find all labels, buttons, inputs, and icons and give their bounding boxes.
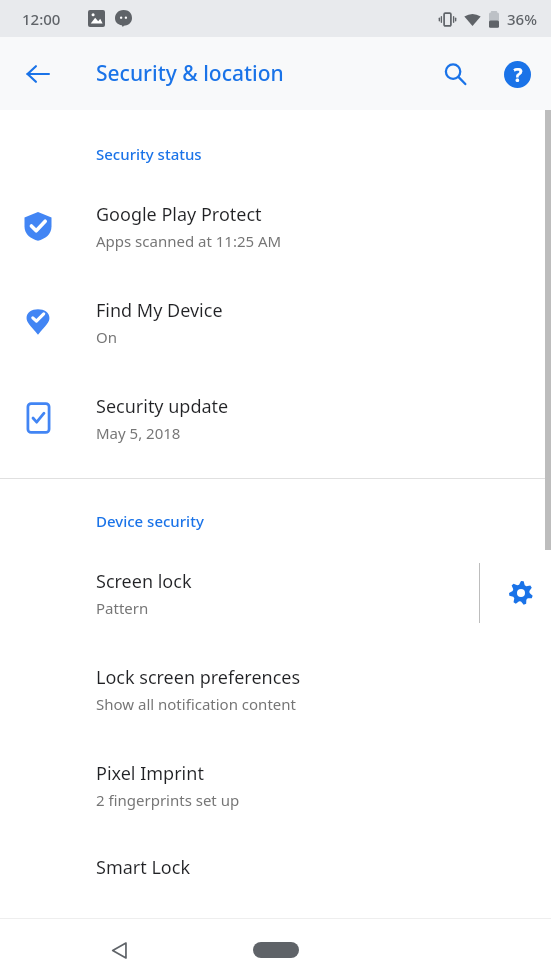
button[interactable]: Lock screen preferences <box>0 653 551 725</box>
staticText: Pattern <box>96 598 149 618</box>
button[interactable]: Screen lock <box>0 557 551 629</box>
staticText: 12:00 <box>22 9 61 29</box>
staticText: Screen lock <box>96 569 192 594</box>
button[interactable]: Home <box>246 930 306 970</box>
button[interactable]: Search <box>431 50 479 98</box>
staticText: Lock screen preferences <box>96 665 301 690</box>
staticText: Security & location <box>96 59 284 88</box>
staticText: May 5, 2018 <box>96 423 181 443</box>
staticText: 2 fingerprints set up <box>96 790 240 810</box>
staticText: Security update <box>96 394 229 419</box>
button[interactable]: Google Play Protect <box>0 190 551 262</box>
button[interactable]: Find My Device <box>0 286 551 358</box>
staticText: Device security <box>96 511 551 531</box>
button[interactable]: Smart Lock <box>0 843 551 891</box>
staticText: Security status <box>96 144 551 164</box>
staticText: Smart Lock <box>96 855 190 880</box>
staticText: Find My Device <box>96 298 223 323</box>
staticText: Show all notification content <box>96 694 296 714</box>
button[interactable]: Back <box>14 50 62 98</box>
button[interactable]: Back <box>97 928 141 972</box>
staticText: Apps scanned at 11:25 AM <box>96 231 282 251</box>
staticText: On <box>96 327 117 347</box>
button[interactable]: Pixel Imprint <box>0 749 551 821</box>
button[interactable]: Help <box>493 50 541 98</box>
button[interactable]: Screen lock settings <box>491 557 551 629</box>
staticText: ? <box>513 62 523 88</box>
staticText: 36% <box>507 9 537 29</box>
staticText: Pixel Imprint <box>96 761 204 786</box>
button[interactable]: Security update <box>0 382 551 454</box>
staticText: Google Play Protect <box>96 202 262 227</box>
